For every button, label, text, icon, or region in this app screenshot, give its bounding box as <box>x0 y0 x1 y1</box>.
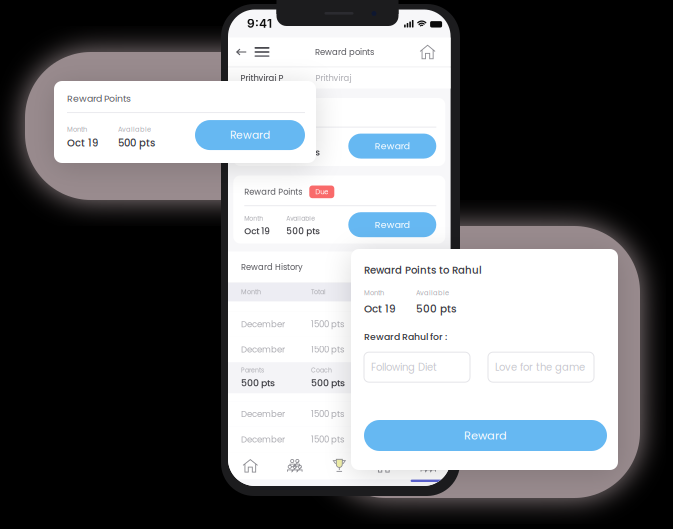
staticText: 1500 pts <box>311 344 344 355</box>
staticText: Month <box>244 136 263 144</box>
staticText: Available <box>416 288 449 297</box>
button[interactable]: December <box>228 427 451 452</box>
staticText: 1500 pts <box>311 318 344 330</box>
staticText: Following Diet <box>371 360 437 374</box>
staticText: December <box>241 344 285 355</box>
staticText: 1500 pts <box>311 408 344 420</box>
staticText: Month <box>364 288 384 297</box>
staticText: 1500 pts <box>311 433 344 445</box>
button[interactable]: Reward <box>348 134 436 159</box>
button[interactable]: Following Diet <box>364 352 470 382</box>
staticText: Month <box>241 287 261 296</box>
button[interactable]: Prithviraj <box>315 72 390 84</box>
staticText: Available <box>286 214 315 223</box>
button[interactable]: Menu <box>250 40 273 64</box>
staticText: Reward Points <box>244 186 302 198</box>
staticText: Prithviraj P <box>240 72 283 84</box>
staticText: Prithviraj <box>315 72 351 84</box>
staticText: December <box>241 433 285 445</box>
staticText: 500 pts <box>416 301 457 316</box>
staticText: Reward History <box>241 261 303 273</box>
button[interactable]: December <box>228 401 451 427</box>
staticText: Oct 19 <box>244 225 270 237</box>
staticText: Reward <box>464 428 507 443</box>
button[interactable]: Month <box>228 282 451 301</box>
staticText: Month <box>67 125 87 134</box>
staticText: Parents <box>241 366 264 375</box>
button[interactable]: December <box>228 311 451 337</box>
staticText: Month <box>244 214 263 223</box>
staticText: Reward <box>230 128 270 142</box>
staticText: 500 pts <box>118 136 155 150</box>
staticText: Reward Rahul for : <box>364 330 447 343</box>
staticText: Due <box>315 187 328 197</box>
staticText: 500 pts <box>286 146 320 159</box>
button[interactable]: Reward <box>364 420 607 451</box>
staticText: Reward Points to Rahul <box>364 263 482 277</box>
staticText: Love for the game <box>495 360 585 374</box>
button[interactable]: Back <box>232 40 250 64</box>
staticText: Reward points <box>315 46 374 58</box>
staticText: 500 pts <box>241 377 275 390</box>
staticText: Paid <box>379 344 398 355</box>
button[interactable]: Activity <box>362 451 406 481</box>
button[interactable]: Love for the game <box>488 352 594 382</box>
button[interactable]: Team <box>273 451 317 481</box>
staticText: 500 pts <box>379 377 413 390</box>
staticText: 500 pts <box>311 377 345 390</box>
staticText: 9:41 <box>247 16 272 31</box>
button[interactable]: December <box>228 337 451 362</box>
button[interactable]: Reward <box>348 212 436 237</box>
staticText: Reward Points <box>244 108 302 120</box>
staticText: Oct 19 <box>67 136 98 150</box>
staticText: Reward Points <box>67 92 131 105</box>
button[interactable]: Prithviraj P <box>240 72 315 84</box>
button[interactable]: Rewards <box>317 451 362 481</box>
button[interactable]: Home <box>416 40 440 64</box>
staticText: Available <box>118 125 151 134</box>
staticText: Oct 19 <box>244 146 270 159</box>
staticText: Reward <box>375 218 410 231</box>
staticText: Oct 19 <box>364 301 396 316</box>
button[interactable]: Profile <box>406 451 451 481</box>
staticText: Total <box>311 287 326 296</box>
staticText: Status <box>379 287 398 296</box>
staticText: Available <box>286 136 315 144</box>
button[interactable]: Home <box>228 451 273 481</box>
staticText: December <box>241 318 285 330</box>
staticText: 500 pts <box>286 225 320 237</box>
button[interactable]: Reward <box>195 120 305 150</box>
staticText: December <box>241 408 285 420</box>
staticText: Reward <box>375 139 410 153</box>
staticText: Total <box>379 366 394 375</box>
staticText: Coach <box>311 366 332 375</box>
